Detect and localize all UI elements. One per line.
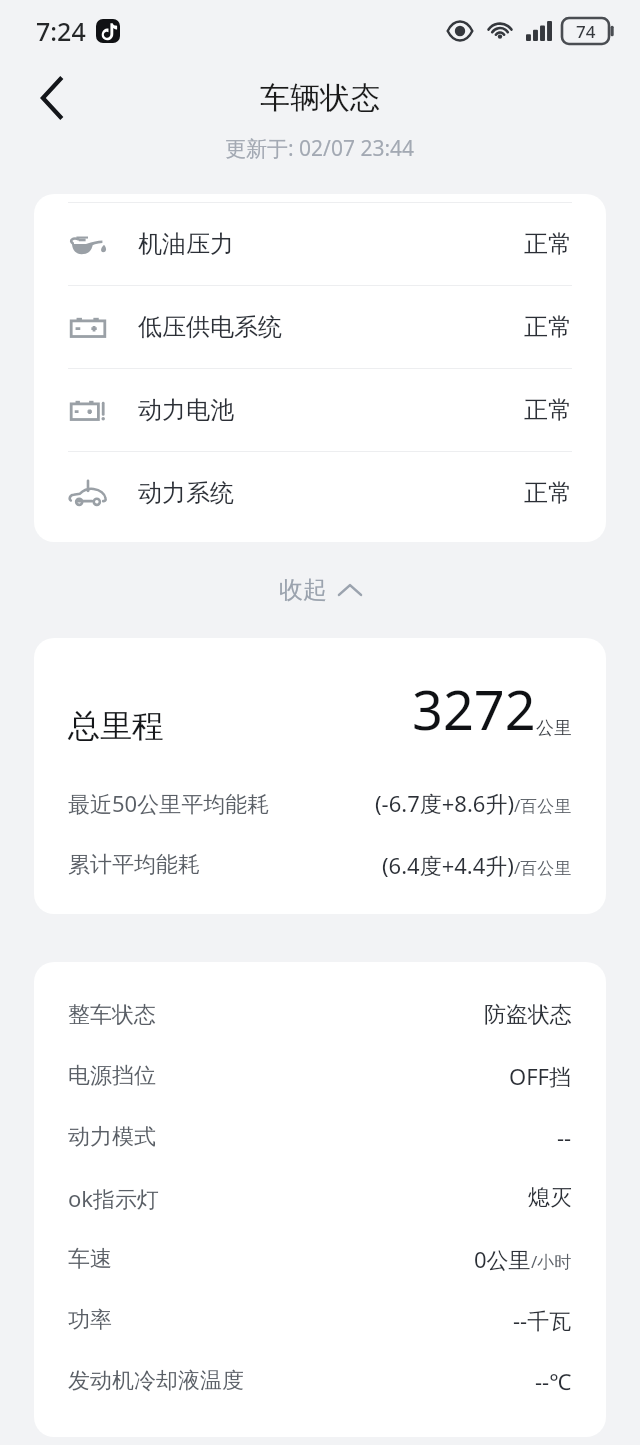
staticText: 正常 <box>524 478 572 508</box>
staticText: 车速 <box>68 1245 474 1273</box>
staticText: 电源挡位 <box>68 1062 509 1090</box>
button[interactable]: 动力系统 <box>34 452 606 534</box>
button[interactable]: 电源挡位 <box>34 1045 606 1106</box>
button[interactable]: 整车状态 <box>34 984 606 1045</box>
staticText: ok指示灯 <box>68 1183 528 1213</box>
staticText: 收起 <box>279 575 327 605</box>
staticText: 累计平均能耗 <box>68 851 382 879</box>
staticText: 公里 <box>536 717 572 740</box>
button[interactable]: 车速 <box>34 1228 606 1289</box>
staticText: 总里程 <box>68 706 412 746</box>
staticText: 防盗状态 <box>484 1001 572 1029</box>
button[interactable]: Back <box>22 68 82 128</box>
staticText: 74 <box>576 20 596 43</box>
staticText: 正常 <box>524 312 572 342</box>
staticText: 7:24 <box>36 14 86 48</box>
staticText: 机油压力 <box>138 229 524 259</box>
button[interactable]: 功率 <box>34 1289 606 1350</box>
staticText: 发动机冷却液温度 <box>68 1367 535 1395</box>
staticText: 3272 <box>412 672 536 746</box>
button[interactable]: 低压供电系统 <box>34 286 606 368</box>
staticText: /百公里 <box>514 856 572 879</box>
staticText: -- <box>557 1122 572 1152</box>
staticText: --千瓦 <box>513 1305 572 1335</box>
button[interactable]: 累计平均能耗 <box>34 834 606 896</box>
button[interactable]: 总里程 <box>34 672 606 746</box>
staticText: --℃ <box>535 1366 572 1396</box>
button[interactable]: 发动机冷却液温度 <box>34 1350 606 1411</box>
staticText: 正常 <box>524 395 572 425</box>
staticText: 动力电池 <box>138 395 524 425</box>
staticText: 熄灭 <box>528 1184 572 1212</box>
button[interactable]: ok指示灯 <box>34 1167 606 1228</box>
staticText: 动力模式 <box>68 1123 557 1151</box>
button[interactable]: 最近50公里平均能耗 <box>34 772 606 834</box>
button[interactable]: 动力电池 <box>34 369 606 451</box>
staticText: (-6.7度+8.6升) <box>375 788 514 818</box>
staticText: 动力系统 <box>138 478 524 508</box>
staticText: 正常 <box>524 229 572 259</box>
staticText: OFF挡 <box>509 1061 572 1091</box>
staticText: 低压供电系统 <box>138 312 524 342</box>
staticText: 最近50公里平均能耗 <box>68 788 375 818</box>
button[interactable]: 动力模式 <box>34 1106 606 1167</box>
staticText: /小时 <box>531 1250 572 1273</box>
button[interactable]: 机油压力 <box>34 203 606 285</box>
staticText: 整车状态 <box>68 1001 484 1029</box>
staticText: 车辆状态 <box>260 79 380 117</box>
staticText: (6.4度+4.4升) <box>382 850 514 880</box>
staticText: /百公里 <box>514 794 572 817</box>
staticText: 更新于: 02/07 23:44 <box>225 134 415 163</box>
staticText: 0公里 <box>474 1244 531 1274</box>
button[interactable]: 收起 <box>251 561 389 619</box>
staticText: 功率 <box>68 1306 513 1334</box>
